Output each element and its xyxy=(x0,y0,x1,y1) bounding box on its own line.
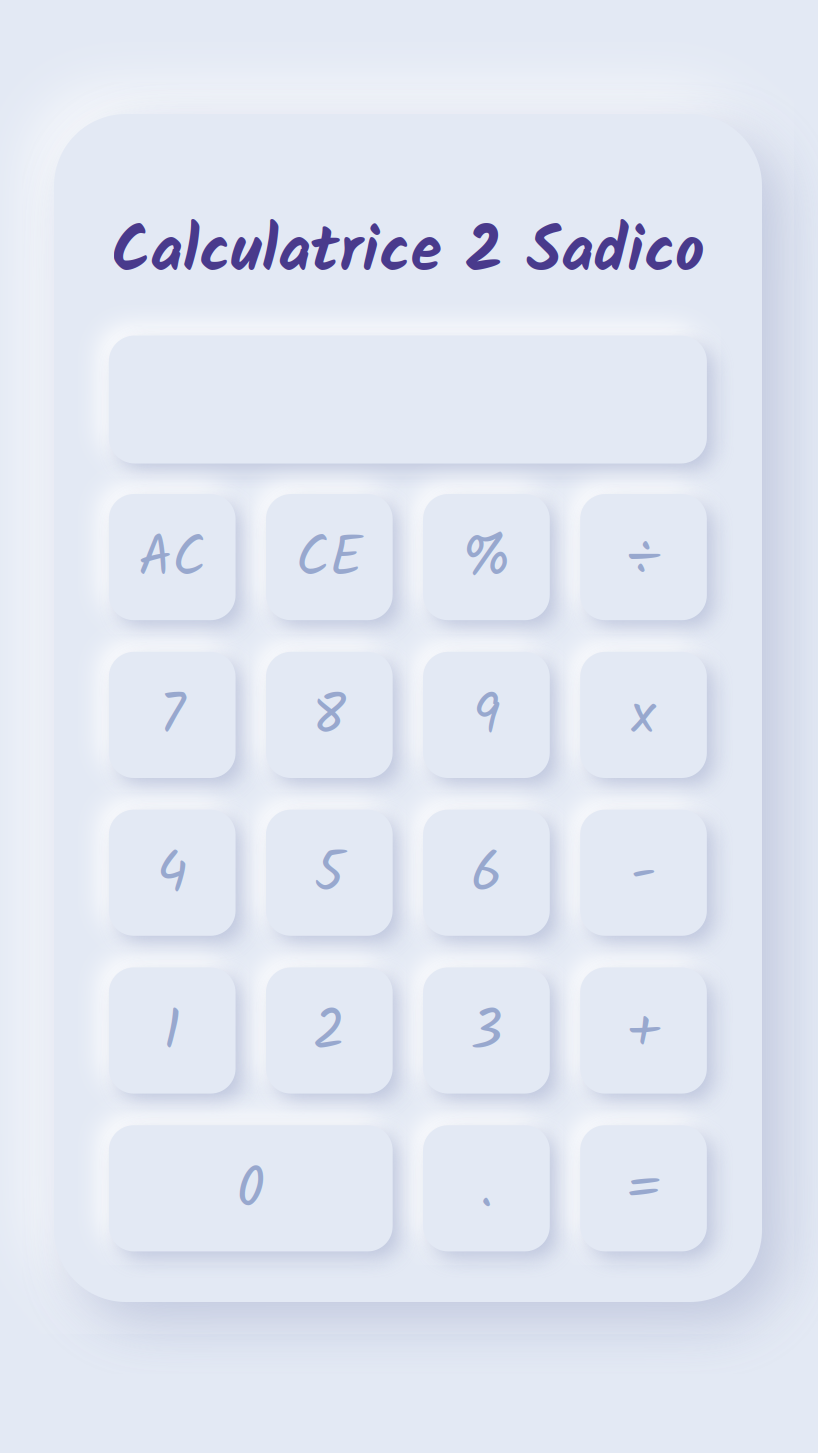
staticText: 7 xyxy=(159,673,185,763)
button[interactable]: 1 xyxy=(109,967,236,1094)
staticText: 4 xyxy=(157,831,188,920)
button[interactable]: 5 xyxy=(266,810,393,936)
staticText: % xyxy=(461,515,511,605)
button[interactable]: Divide xyxy=(580,494,707,620)
staticText: 8 xyxy=(312,673,346,763)
button[interactable]: 4 xyxy=(109,810,236,936)
staticText: 6 xyxy=(471,831,502,920)
staticText: 3 xyxy=(470,989,502,1078)
button[interactable]: 2 xyxy=(266,967,393,1094)
button[interactable]: 9 xyxy=(423,652,550,778)
staticText: 5 xyxy=(314,831,344,920)
staticText: + xyxy=(626,989,660,1078)
button[interactable]: 3 xyxy=(423,967,550,1094)
button[interactable]: Equals xyxy=(580,1125,707,1251)
button[interactable]: 0 xyxy=(109,1125,393,1251)
staticText: Calculatrice 2 Sadico xyxy=(111,203,704,305)
button[interactable]: 7 xyxy=(109,652,236,778)
button[interactable]: All clear xyxy=(109,494,236,620)
button[interactable]: Percent xyxy=(423,494,550,620)
button[interactable]: Minus xyxy=(580,810,707,936)
button[interactable]: 8 xyxy=(266,652,393,778)
button[interactable]: Plus xyxy=(580,967,707,1094)
button[interactable]: Multiply xyxy=(580,652,707,778)
staticText: x xyxy=(631,673,655,763)
staticText: AC xyxy=(138,515,206,605)
staticText: 9 xyxy=(473,673,500,763)
staticText: 1 xyxy=(163,989,181,1078)
staticText: CE xyxy=(296,515,363,605)
staticText: = xyxy=(626,1147,661,1236)
staticText: 2 xyxy=(313,989,346,1078)
button[interactable]: Clear entry xyxy=(266,494,393,620)
staticText: - xyxy=(630,831,656,920)
staticText: ÷ xyxy=(626,515,660,605)
button[interactable]: 6 xyxy=(423,810,550,936)
staticText: . xyxy=(480,1147,493,1236)
button[interactable]: Decimal point xyxy=(423,1125,550,1251)
staticText: 0 xyxy=(237,1147,265,1236)
